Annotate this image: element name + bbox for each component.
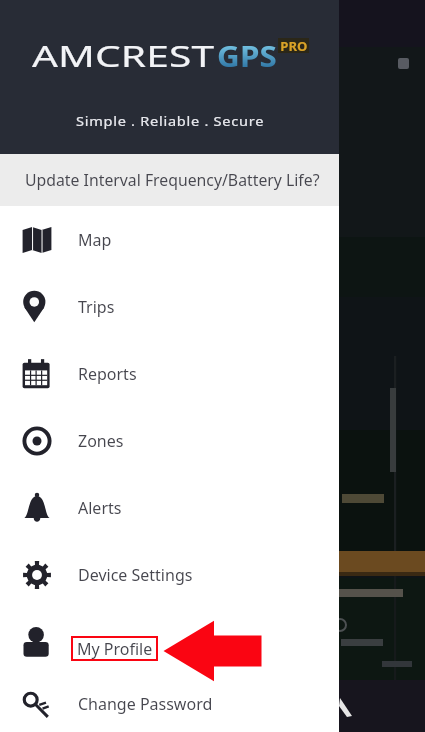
button[interactable]: Zones xyxy=(0,407,339,474)
staticText: Device Settings xyxy=(78,564,193,586)
button[interactable]: Update Interval Frequency/Battery Life? xyxy=(0,154,339,206)
button[interactable]: Map xyxy=(0,206,339,273)
staticText: Simple . Reliable . Secure xyxy=(76,112,264,130)
staticText: Change Password xyxy=(78,693,213,715)
button[interactable]: My Profile xyxy=(0,608,339,675)
staticText: Update Interval Frequency/Battery Life? xyxy=(25,169,320,191)
staticText: Reports xyxy=(78,363,137,385)
button[interactable]: Change Password xyxy=(0,675,339,732)
staticText: Zones xyxy=(78,430,124,452)
button[interactable]: Alerts xyxy=(0,474,339,541)
staticText: Alerts xyxy=(78,497,122,519)
staticText: GPS xyxy=(217,36,277,75)
button[interactable]: Trips xyxy=(0,273,339,340)
staticText: AMCREST xyxy=(32,36,215,75)
staticText: My Profile xyxy=(77,638,153,659)
staticText: PRO xyxy=(280,38,308,53)
staticText: Trips xyxy=(78,296,115,318)
staticText: Map xyxy=(78,229,112,251)
button[interactable]: Device Settings xyxy=(0,541,339,608)
button[interactable]: Reports xyxy=(0,340,339,407)
